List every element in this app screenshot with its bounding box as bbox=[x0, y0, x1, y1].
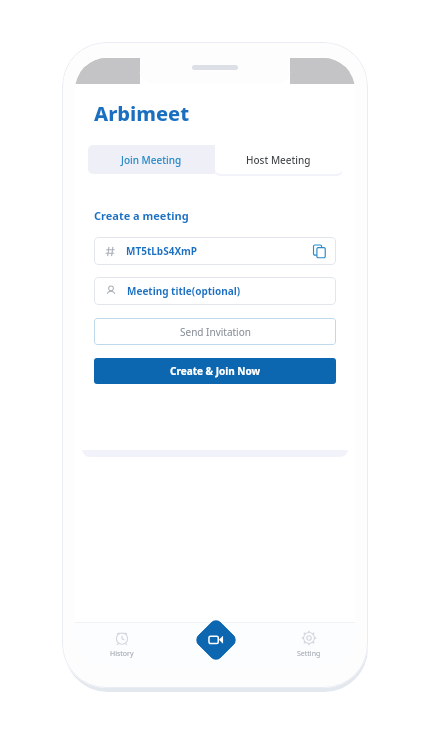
button[interactable]: Host Meeting bbox=[215, 145, 342, 174]
staticText: Create & Join Now bbox=[170, 364, 261, 378]
button[interactable]: Meeting title(optional) bbox=[94, 277, 336, 305]
staticText: MT5tLbS4XmP bbox=[126, 244, 198, 258]
staticText: Send Invitation bbox=[180, 325, 251, 339]
button[interactable]: New meeting bbox=[193, 618, 239, 662]
button[interactable]: Send Invitation bbox=[94, 318, 336, 345]
staticText: History bbox=[110, 649, 134, 659]
staticText: Arbimeet bbox=[94, 100, 190, 127]
button[interactable]: MT5tLbS4XmP bbox=[94, 237, 336, 265]
button[interactable]: Setting bbox=[262, 622, 355, 666]
staticText: Host Meeting bbox=[246, 153, 311, 167]
button[interactable]: History bbox=[75, 622, 169, 666]
staticText: Setting bbox=[297, 649, 321, 659]
button[interactable]: Join Meeting bbox=[88, 145, 215, 174]
staticText: Join Meeting bbox=[121, 153, 182, 167]
button[interactable]: Copy meeting code bbox=[307, 239, 331, 263]
staticText: Meeting title(optional) bbox=[127, 284, 241, 298]
staticText: Create a meeting bbox=[94, 208, 189, 223]
button[interactable]: Create & Join Now bbox=[94, 358, 336, 384]
